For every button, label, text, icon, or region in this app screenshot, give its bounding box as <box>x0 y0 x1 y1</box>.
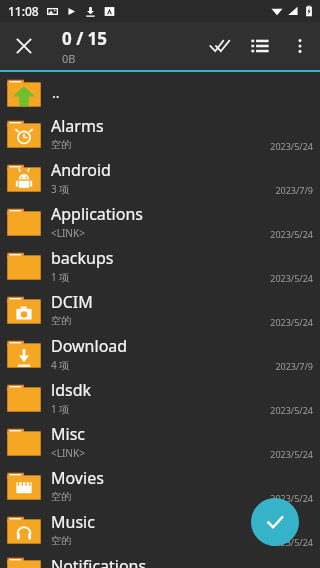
button[interactable]: Select all <box>200 26 240 66</box>
staticText: 2023/7/9 <box>275 184 313 196</box>
staticText: Alarms <box>51 115 104 137</box>
staticText: backups <box>51 247 114 269</box>
button[interactable]: Alarms <box>0 112 320 156</box>
button[interactable]: backups <box>0 244 320 288</box>
button[interactable]: .. <box>0 72 320 112</box>
staticText: Android <box>51 159 111 181</box>
button[interactable]: Music <box>0 508 320 552</box>
staticText: 2023/5/24 <box>270 272 313 284</box>
button[interactable]: Download <box>0 332 320 376</box>
staticText: 2023/7/9 <box>275 360 313 372</box>
button[interactable]: Close selection <box>4 26 44 66</box>
staticText: Misc <box>51 423 85 445</box>
staticText: 11:08 <box>8 3 39 19</box>
staticText: 2023/5/24 <box>270 316 313 328</box>
button[interactable]: Android <box>0 156 320 200</box>
staticText: 空的 <box>51 138 71 151</box>
button[interactable]: View mode <box>240 26 280 66</box>
staticText: <LINK> <box>51 226 85 240</box>
staticText: 2023/5/24 <box>270 140 313 152</box>
button[interactable]: Confirm selection <box>251 498 299 546</box>
staticText: ldsdk <box>51 379 92 401</box>
staticText: <LINK> <box>51 446 85 460</box>
staticText: DCIM <box>51 291 93 313</box>
staticText: 2023/5/24 <box>270 228 313 240</box>
staticText: Music <box>51 511 95 533</box>
staticText: Movies <box>51 467 104 489</box>
staticText: 3 项 <box>51 182 70 196</box>
staticText: 空的 <box>51 314 71 327</box>
staticText: .. <box>52 83 60 102</box>
staticText: 4 项 <box>51 358 70 372</box>
staticText: Download <box>51 335 128 357</box>
button[interactable]: Movies <box>0 464 320 508</box>
staticText: 2023/5/24 <box>270 448 313 460</box>
button[interactable]: ldsdk <box>0 376 320 420</box>
staticText: 1 项 <box>51 402 70 416</box>
button[interactable]: Misc <box>0 420 320 464</box>
button[interactable]: Notifications <box>0 552 320 568</box>
staticText: 2023/5/24 <box>270 492 313 504</box>
staticText: Notifications <box>51 555 147 568</box>
staticText: 1 项 <box>51 270 70 284</box>
staticText: 2023/5/24 <box>270 404 313 416</box>
staticText: 2023/5/24 <box>270 536 313 548</box>
button[interactable]: DCIM <box>0 288 320 332</box>
staticText: 空的 <box>51 534 71 547</box>
staticText: 0 / 15 <box>62 27 108 50</box>
button[interactable]: Applications <box>0 200 320 244</box>
button[interactable]: More options <box>280 26 320 66</box>
staticText: Applications <box>51 203 143 225</box>
staticText: 0B <box>62 51 76 66</box>
staticText: 空的 <box>51 490 71 503</box>
